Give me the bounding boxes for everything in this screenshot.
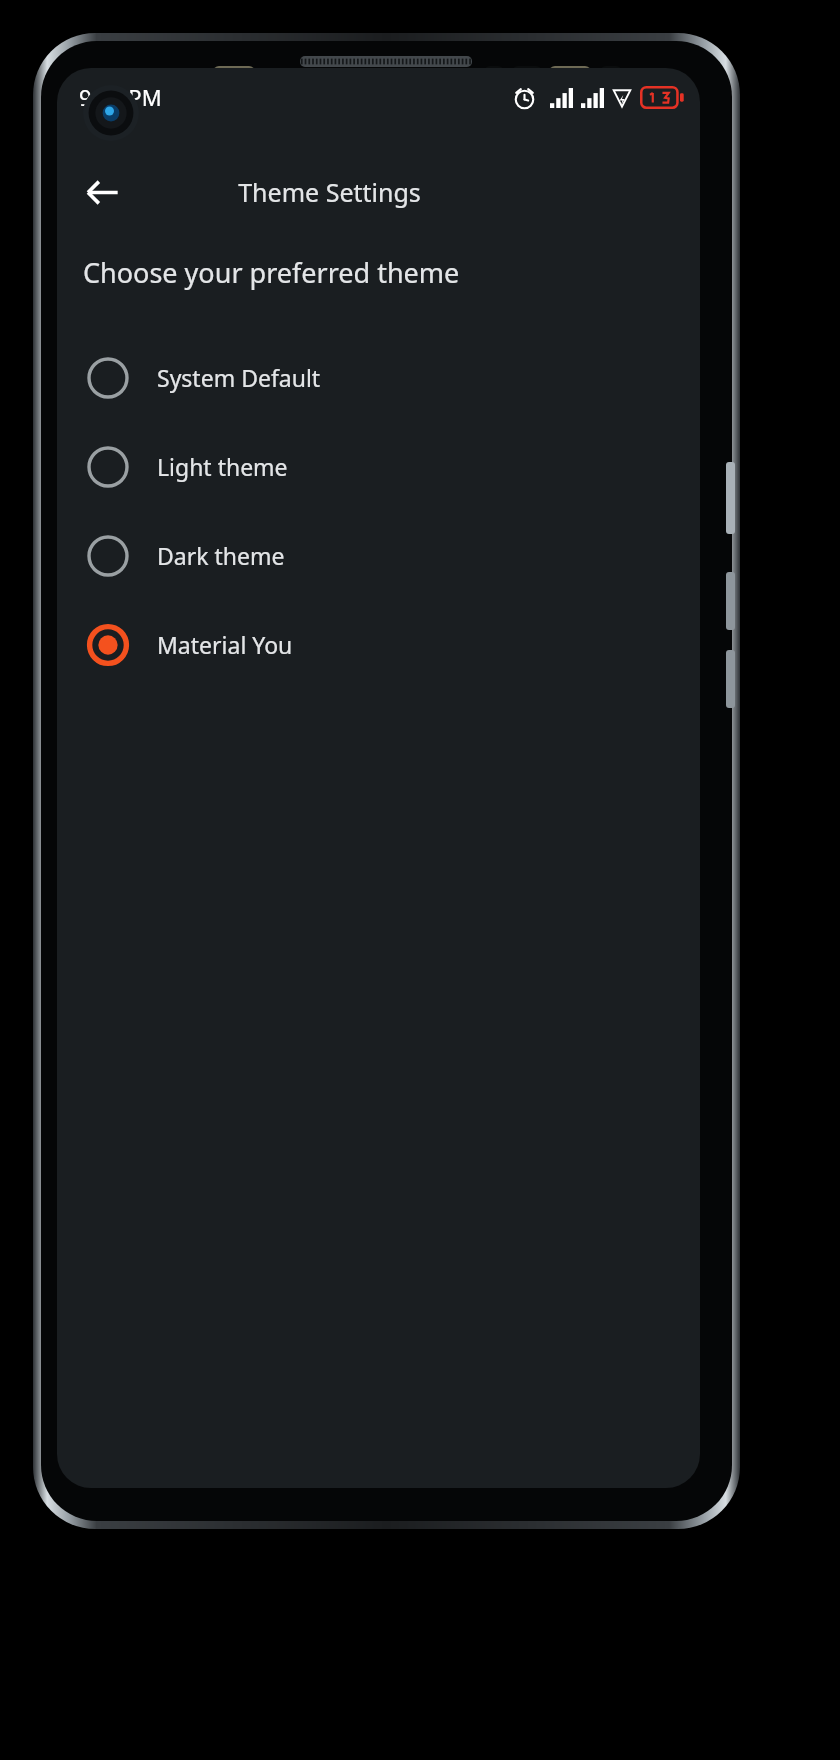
button[interactable]: System Default: [57, 333, 700, 422]
staticText: System Default: [157, 362, 321, 393]
staticText: Material You: [157, 629, 293, 660]
button[interactable]: Back: [75, 165, 129, 219]
button[interactable]: Material You: [57, 600, 700, 689]
staticText: Choose your preferred theme: [83, 254, 460, 291]
staticText: Theme Settings: [238, 175, 421, 209]
staticText: Dark theme: [157, 540, 285, 571]
staticText: 9:21 PM: [79, 82, 162, 112]
button[interactable]: Dark theme: [57, 511, 700, 600]
button[interactable]: Light theme: [57, 422, 700, 511]
staticText: Light theme: [157, 451, 288, 482]
